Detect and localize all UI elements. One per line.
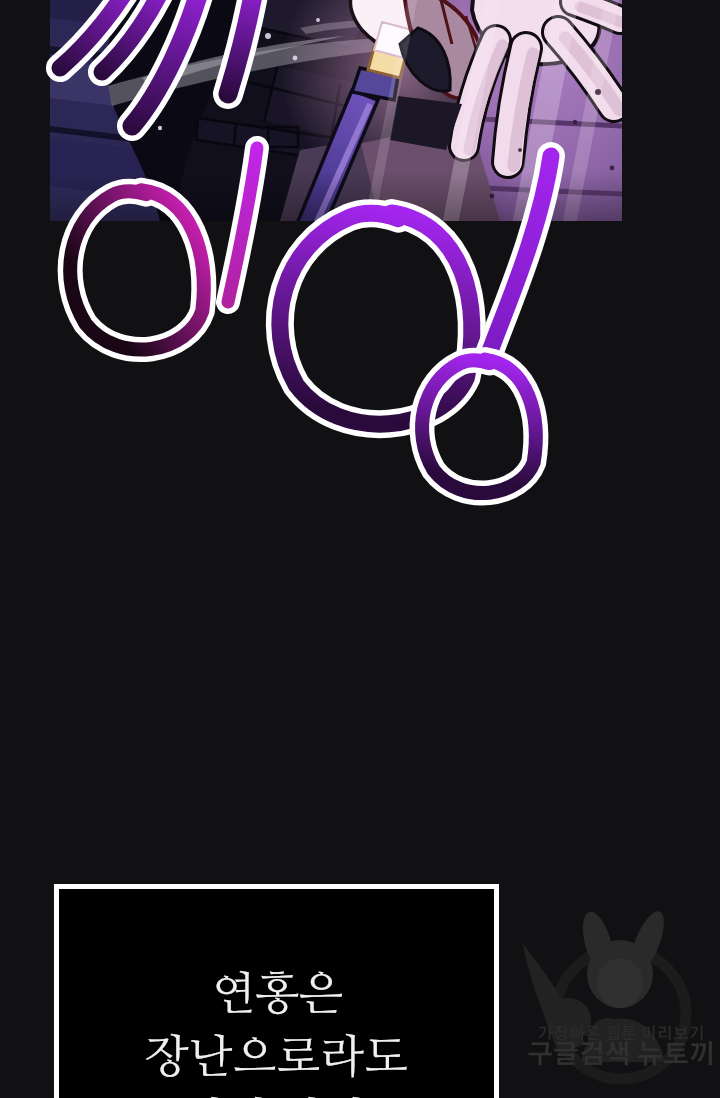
button[interactable]: Webtoon page — [0, 0, 720, 1098]
staticText: 구글검색 뉴토끼 — [527, 1042, 715, 1068]
staticText: 장난으로라도 — [145, 1035, 408, 1081]
staticText: 연홍은 — [211, 972, 343, 1018]
staticText: 가장빠른 웹툰 미리보기 — [537, 1026, 705, 1042]
